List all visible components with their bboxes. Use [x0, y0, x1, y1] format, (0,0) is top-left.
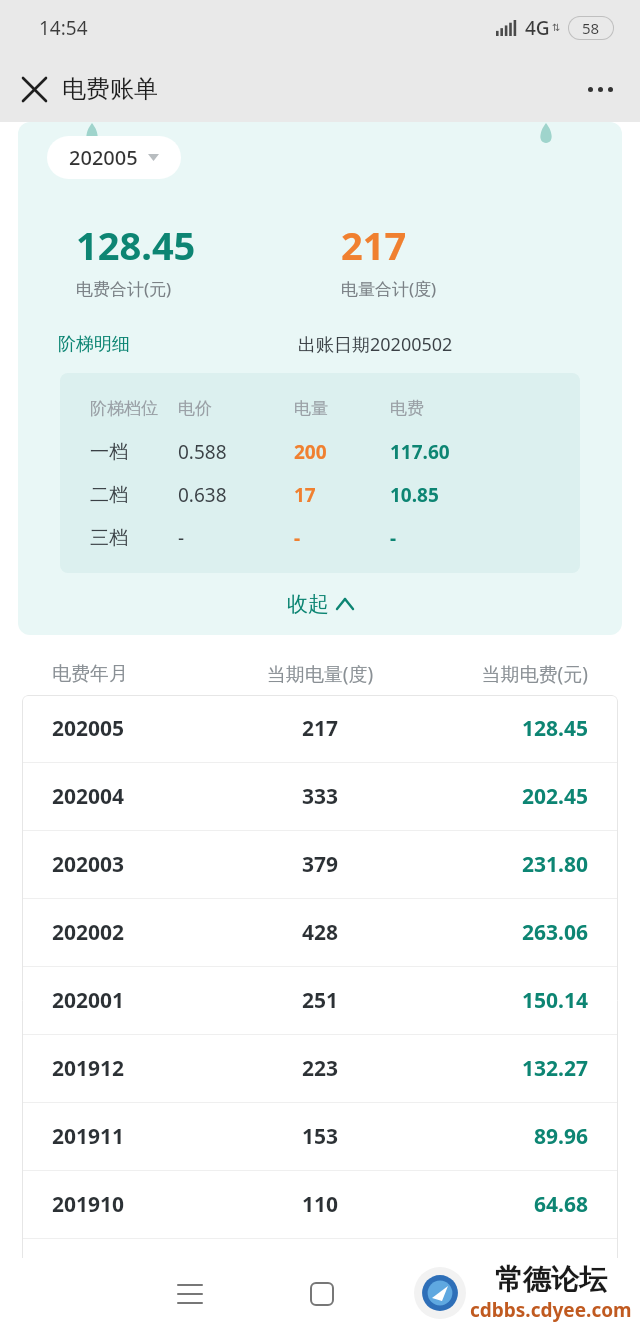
staticText: -: [294, 525, 390, 551]
staticText: 202003: [52, 850, 225, 879]
staticText: 202005: [52, 714, 225, 743]
staticText: 150.14: [415, 986, 588, 1015]
staticText: 333: [225, 782, 415, 811]
staticText: cdbbs.cdyee.com: [470, 1297, 632, 1323]
staticText: 128: [225, 1258, 415, 1287]
staticText: 电费合计(元): [76, 277, 172, 300]
staticText: 231.80: [415, 850, 588, 879]
staticText: 200: [294, 439, 390, 465]
button[interactable]: 201911: [22, 1103, 618, 1170]
button[interactable]: More options: [574, 63, 626, 115]
staticText: 阶梯档位: [90, 398, 178, 419]
button[interactable]: 202005: [22, 695, 618, 762]
staticText: 收起: [287, 591, 329, 617]
staticText: 251: [225, 986, 415, 1015]
staticText: 58: [582, 18, 600, 38]
staticText: 4G: [525, 15, 550, 41]
button[interactable]: 202004: [22, 763, 618, 830]
staticText: 263.06: [415, 918, 588, 947]
staticText: -: [178, 525, 294, 551]
staticText: 428: [225, 918, 415, 947]
staticText: 17: [294, 482, 390, 508]
button[interactable]: 202005: [47, 136, 181, 179]
staticText: 132.27: [415, 1054, 588, 1083]
button[interactable]: Recent apps: [160, 1264, 220, 1324]
staticText: 153: [225, 1122, 415, 1151]
staticText: 202005: [69, 144, 138, 171]
button[interactable]: Close: [8, 63, 60, 115]
staticText: 电费账单: [62, 74, 158, 104]
staticText: 常德论坛: [495, 1262, 607, 1297]
staticText: 202001: [52, 986, 225, 1015]
staticText: 223: [225, 1054, 415, 1083]
staticText: 202002: [52, 918, 225, 947]
staticText: 201911: [52, 1122, 225, 1151]
staticText: 电量: [294, 398, 390, 419]
staticText: 当期电费(元): [418, 661, 588, 687]
staticText: 117.60: [390, 439, 580, 465]
staticText: 电费: [390, 398, 580, 419]
staticText: 202.45: [415, 782, 588, 811]
button[interactable]: Home: [292, 1264, 352, 1324]
button[interactable]: 201910: [22, 1171, 618, 1238]
staticText: 201912: [52, 1054, 225, 1083]
staticText: 当期电量(度): [222, 661, 418, 687]
staticText: 217: [341, 219, 407, 271]
staticText: 64.68: [415, 1190, 588, 1219]
staticText: 201910: [52, 1190, 225, 1219]
staticText: 110: [225, 1190, 415, 1219]
staticText: 一档: [90, 440, 178, 464]
staticText: 出账日期20200502: [298, 332, 453, 357]
staticText: 电量合计(度): [341, 277, 437, 300]
staticText: 89.96: [415, 1122, 588, 1151]
staticText: -: [390, 525, 580, 551]
staticText: 0.638: [178, 482, 294, 508]
staticText: ⇅: [552, 22, 561, 34]
staticText: 电费年月: [52, 662, 222, 686]
staticText: 10.85: [390, 482, 580, 508]
staticText: 201909: [52, 1258, 225, 1287]
button[interactable]: 201909: [22, 1239, 618, 1306]
staticText: 202004: [52, 782, 225, 811]
staticText: 217: [225, 714, 415, 743]
button[interactable]: 202003: [22, 831, 618, 898]
staticText: 电价: [178, 398, 294, 419]
button[interactable]: 202001: [22, 967, 618, 1034]
button[interactable]: 201912: [22, 1035, 618, 1102]
staticText: 0.588: [178, 439, 294, 465]
button[interactable]: 收起: [18, 573, 622, 635]
staticText: 二档: [90, 483, 178, 507]
staticText: 379: [225, 850, 415, 879]
button[interactable]: 202002: [22, 899, 618, 966]
staticText: 三档: [90, 526, 178, 550]
staticText: 128.45: [415, 714, 588, 743]
button[interactable]: 阶梯明细: [58, 333, 130, 356]
staticText: 14:54: [39, 15, 88, 41]
staticText: 128.45: [76, 219, 196, 271]
staticText: 75.26: [415, 1258, 588, 1287]
